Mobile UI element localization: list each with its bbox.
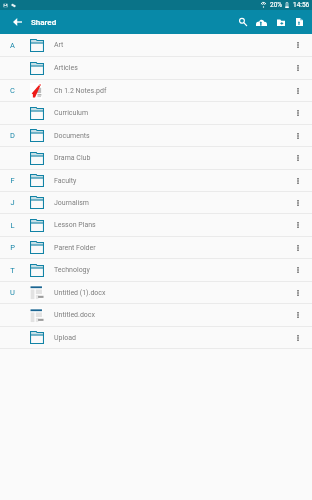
staticText: P <box>10 243 15 252</box>
staticText: Drama Club <box>54 154 91 162</box>
button[interactable]: D <box>0 125 312 146</box>
staticText: Articles <box>54 64 78 72</box>
staticText: J <box>10 198 15 207</box>
button[interactable]: A <box>0 34 312 56</box>
staticText: Untitled.docx <box>54 311 95 319</box>
button[interactable]: P <box>0 237 312 258</box>
button[interactable]: More options <box>284 102 312 124</box>
staticText: Journalism <box>54 199 89 207</box>
button[interactable]: More options <box>284 214 312 236</box>
staticText: Ch 1.2 Notes.pdf <box>54 87 107 95</box>
staticText: Upload <box>54 334 76 342</box>
staticText: 20% <box>270 1 283 9</box>
button[interactable]: Articles <box>0 57 312 79</box>
button[interactable]: Upload <box>252 10 271 34</box>
button[interactable]: More options <box>284 34 312 56</box>
staticText: U <box>10 288 15 297</box>
button[interactable]: U <box>0 282 312 303</box>
button[interactable]: More options <box>284 327 312 348</box>
button[interactable]: More options <box>284 192 312 213</box>
button[interactable]: More options <box>284 237 312 258</box>
button[interactable]: Curriculum <box>0 102 312 124</box>
button[interactable]: New folder <box>271 10 290 34</box>
button[interactable]: New file <box>290 10 309 34</box>
staticText: Technology <box>54 266 90 274</box>
staticText: T <box>10 266 15 275</box>
button[interactable]: J <box>0 192 312 213</box>
staticText: Art <box>54 41 64 49</box>
staticText: Faculty <box>54 177 77 185</box>
staticText: Shared <box>31 18 57 27</box>
button[interactable]: F <box>0 170 312 191</box>
staticText: Curriculum <box>54 109 89 117</box>
button[interactable]: More options <box>284 170 312 191</box>
staticText: Lesson Plans <box>54 221 96 229</box>
staticText: F <box>10 176 15 185</box>
staticText: A <box>10 41 15 50</box>
button[interactable]: Drama Club <box>0 147 312 169</box>
staticText: 14:56 <box>293 1 310 9</box>
staticText: Parent Folder <box>54 244 96 252</box>
button[interactable]: Untitled.docx <box>0 304 312 326</box>
button[interactable]: More options <box>284 304 312 326</box>
button[interactable]: C <box>0 80 312 101</box>
staticText: D <box>10 131 15 140</box>
button[interactable]: Upload <box>0 327 312 348</box>
button[interactable]: More options <box>284 80 312 101</box>
staticText: L <box>10 221 15 230</box>
button[interactable]: L <box>0 214 312 236</box>
staticText: Untitled (1).docx <box>54 289 106 297</box>
button[interactable]: More options <box>284 282 312 303</box>
button[interactable]: More options <box>284 57 312 79</box>
button[interactable]: More options <box>284 125 312 146</box>
button[interactable]: Navigate up <box>8 10 27 34</box>
staticText: C <box>10 86 15 95</box>
button[interactable]: More options <box>284 259 312 281</box>
button[interactable]: Search <box>233 10 252 34</box>
button[interactable]: T <box>0 259 312 281</box>
button[interactable]: More options <box>284 147 312 169</box>
staticText: Documents <box>54 132 90 140</box>
